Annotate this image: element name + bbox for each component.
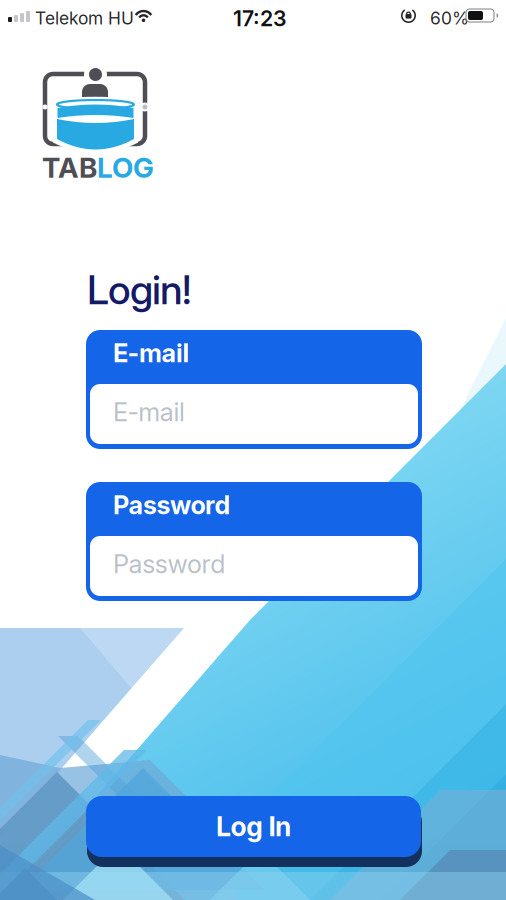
button[interactable]: Log In — [86, 796, 422, 867]
staticText: Log In — [216, 811, 291, 842]
staticText: Login! — [87, 266, 191, 313]
staticText: 17:23 — [233, 6, 287, 31]
staticText: LOG — [97, 151, 154, 184]
staticText: Telekom HU — [35, 8, 134, 28]
staticText: Password — [113, 490, 230, 520]
staticText: E-mail — [113, 338, 189, 368]
button[interactable]: Password — [86, 482, 422, 601]
button[interactable]: E-mail — [86, 330, 422, 449]
staticText: Password — [113, 549, 225, 579]
staticText: TAB — [42, 151, 97, 184]
staticText: 60% — [430, 8, 469, 28]
staticText: E-mail — [113, 397, 185, 427]
